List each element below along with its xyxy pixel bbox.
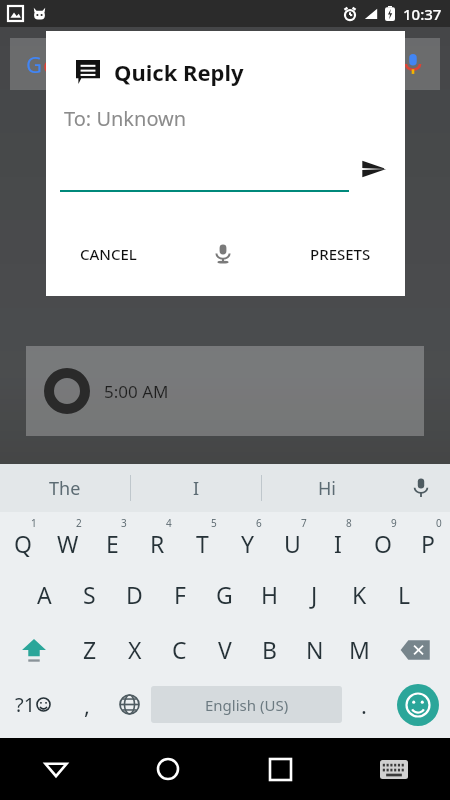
button[interactable]: 9 <box>360 512 405 567</box>
button[interactable]: L <box>382 567 427 622</box>
button[interactable]: K <box>337 567 382 622</box>
staticText: 1 <box>31 516 37 530</box>
button[interactable]: 2 <box>45 512 90 567</box>
button[interactable]: I <box>131 464 261 512</box>
staticText: Y <box>241 528 255 559</box>
staticText: H <box>261 579 279 610</box>
button[interactable]: B <box>247 622 292 677</box>
button[interactable]: A <box>22 567 67 622</box>
staticText: Q <box>14 528 32 559</box>
staticText: R <box>150 528 165 559</box>
staticText: G <box>216 579 233 610</box>
button[interactable]: Z <box>67 622 112 677</box>
staticText: I <box>193 476 200 501</box>
button[interactable]: S <box>67 567 112 622</box>
button[interactable]: Voice input <box>392 464 450 512</box>
button[interactable]: X <box>112 622 157 677</box>
staticText: English (US) <box>205 695 289 715</box>
button[interactable]: 1 <box>0 512 45 567</box>
staticText: 10:37 <box>403 4 442 24</box>
staticText: G <box>26 49 43 79</box>
button[interactable]: 4 <box>135 512 180 567</box>
button[interactable]: 6 <box>225 512 270 567</box>
staticText: E <box>106 528 119 559</box>
button[interactable]: Shift <box>0 622 67 677</box>
button[interactable]: Hi <box>262 464 392 512</box>
button[interactable]: The <box>0 464 130 512</box>
button[interactable]: H <box>247 567 292 622</box>
staticText: 2 <box>76 516 82 530</box>
button[interactable]: F <box>157 567 202 622</box>
button[interactable]: Backspace <box>382 622 450 677</box>
staticText: e <box>91 49 104 79</box>
staticText: K <box>352 579 367 610</box>
staticText: N <box>306 634 324 665</box>
staticText: 5:00 AM <box>104 380 169 403</box>
staticText: Hi <box>318 476 336 501</box>
button[interactable]: 5 <box>180 512 225 567</box>
staticText: The <box>49 476 81 501</box>
button[interactable]: D <box>112 567 157 622</box>
button[interactable]: , <box>65 677 108 732</box>
button[interactable]: G <box>202 567 247 622</box>
staticText: F <box>174 579 186 610</box>
button[interactable]: Home <box>112 738 224 800</box>
staticText: V <box>218 634 232 665</box>
staticText: 7 <box>301 516 307 530</box>
staticText: 5 <box>211 516 217 530</box>
button[interactable]: 7 <box>270 512 315 567</box>
button[interactable]: J <box>292 567 337 622</box>
button[interactable]: Hide keyboard <box>337 738 450 800</box>
staticText: L <box>398 579 411 610</box>
staticText: l <box>85 49 91 79</box>
button[interactable]: 0 <box>405 512 450 567</box>
button[interactable]: PRESETS <box>298 234 383 274</box>
button[interactable]: Back <box>0 738 112 800</box>
button[interactable]: M <box>337 622 382 677</box>
staticText: B <box>262 634 277 665</box>
button[interactable]: Voice input <box>203 234 243 274</box>
staticText: ?1 <box>15 691 36 718</box>
staticText: g <box>71 49 85 79</box>
button[interactable]: English (US) <box>151 686 342 723</box>
staticText: 6 <box>256 516 262 530</box>
staticText: , <box>84 690 90 720</box>
button[interactable]: C <box>157 622 202 677</box>
button[interactable]: 8 <box>315 512 360 567</box>
staticText: 8 <box>346 516 352 530</box>
button[interactable]: Send <box>357 152 391 186</box>
staticText: To: Unknown <box>64 105 187 132</box>
staticText: 3 <box>121 516 127 530</box>
staticText: J <box>311 579 318 610</box>
staticText: T <box>196 528 209 559</box>
staticText: O <box>374 528 392 559</box>
button[interactable]: 3 <box>90 512 135 567</box>
staticText: o <box>43 49 57 79</box>
staticText: P <box>421 528 435 559</box>
button[interactable]: ?1 <box>0 677 65 732</box>
staticText: PRESETS <box>310 244 371 264</box>
staticText: U <box>284 528 301 559</box>
staticText: CANCEL <box>80 244 137 264</box>
staticText: W <box>57 528 79 559</box>
button[interactable]: Change language <box>108 677 151 732</box>
staticText: 4 <box>166 516 172 530</box>
staticText: Quick Reply <box>114 57 244 87</box>
staticText: I <box>334 528 342 559</box>
staticText: M <box>349 634 370 665</box>
staticText: Z <box>83 634 97 665</box>
button[interactable]: N <box>292 622 337 677</box>
button[interactable]: CANCEL <box>68 234 149 274</box>
staticText: S <box>83 579 96 610</box>
staticText: 0 <box>436 516 442 530</box>
staticText: X <box>128 634 142 665</box>
staticText: . <box>361 690 367 720</box>
staticText: C <box>172 634 187 665</box>
button[interactable]: Recent apps <box>224 738 337 800</box>
button[interactable]: . <box>342 677 385 732</box>
button[interactable]: Emoji <box>385 677 450 732</box>
button[interactable]: V <box>202 622 247 677</box>
staticText: D <box>126 579 143 610</box>
staticText: 9 <box>391 516 397 530</box>
